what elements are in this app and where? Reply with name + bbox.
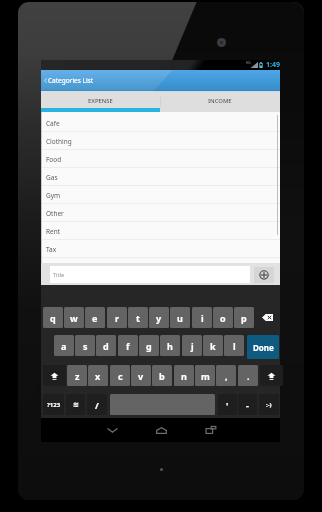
button[interactable]: w xyxy=(64,307,84,328)
button[interactable]: EXPENSE xyxy=(41,91,160,112)
staticText: Done xyxy=(253,342,274,353)
staticText: ≋ xyxy=(73,401,79,409)
staticText: n xyxy=(181,370,187,382)
button[interactable]: Recent apps xyxy=(199,418,223,442)
button[interactable]: u xyxy=(170,307,190,328)
button[interactable]: Categories List xyxy=(41,70,280,91)
staticText: ' xyxy=(226,399,229,411)
button[interactable]: r xyxy=(107,307,127,328)
staticText: j xyxy=(191,340,194,352)
button[interactable]: m xyxy=(195,365,215,386)
staticText: Gas xyxy=(46,173,58,182)
button[interactable]: / xyxy=(87,394,107,415)
staticText: a xyxy=(61,340,67,352)
staticText: b xyxy=(159,370,165,382)
button[interactable]: s xyxy=(75,335,95,356)
button[interactable]: Shift xyxy=(260,365,283,386)
button[interactable]: Other xyxy=(41,204,280,222)
staticText: , xyxy=(225,370,228,382)
staticText: x xyxy=(95,370,101,382)
button[interactable]: q xyxy=(43,307,63,328)
button[interactable]: :-) xyxy=(259,394,279,415)
button[interactable]: e xyxy=(85,307,105,328)
staticText: r xyxy=(115,312,120,324)
button[interactable]: f xyxy=(118,335,138,356)
staticText: t xyxy=(136,312,140,324)
staticText: o xyxy=(220,312,226,324)
staticText: INCOME xyxy=(208,97,232,105)
button[interactable]: Rent xyxy=(41,222,280,240)
staticText: :-) xyxy=(266,401,272,409)
staticText: Cafe xyxy=(46,119,60,128)
button[interactable]: Gym xyxy=(41,186,280,204)
staticText: Clothing xyxy=(46,137,72,146)
button[interactable]: Done xyxy=(247,335,279,359)
button[interactable]: Food xyxy=(41,150,280,168)
button[interactable]: Backspace xyxy=(256,307,279,328)
staticText: Other xyxy=(46,209,64,218)
staticText: ?123 xyxy=(47,401,61,409)
button[interactable]: a xyxy=(54,335,74,356)
button[interactable]: t xyxy=(128,307,148,328)
staticText: Categories List xyxy=(48,76,94,85)
staticText: i xyxy=(201,312,204,324)
staticText: l xyxy=(233,340,236,352)
button[interactable]: Cafe xyxy=(41,114,280,132)
button[interactable]: b xyxy=(152,365,172,386)
staticText: . xyxy=(247,370,250,382)
staticText: v xyxy=(138,370,144,382)
button[interactable]: Tax xyxy=(41,240,280,258)
button[interactable]: Hide keyboard xyxy=(100,418,124,442)
staticText: z xyxy=(75,370,80,382)
staticText: HG xyxy=(246,61,252,65)
staticText: Rent xyxy=(46,227,61,236)
staticText: EXPENSE xyxy=(88,97,113,105)
button[interactable]: d xyxy=(96,335,116,356)
button[interactable]: Add category xyxy=(254,267,274,283)
button[interactable]: INCOME xyxy=(160,91,280,112)
button[interactable]: . xyxy=(238,365,258,386)
staticText: Tax xyxy=(46,245,57,254)
staticText: q xyxy=(50,312,56,324)
button[interactable]: v xyxy=(131,365,151,386)
button[interactable]: Shift xyxy=(43,365,66,386)
staticText: y xyxy=(156,312,162,324)
staticText: h xyxy=(167,340,173,352)
staticText: / xyxy=(95,399,99,411)
staticText: Food xyxy=(46,155,62,164)
button[interactable]: y xyxy=(149,307,169,328)
button[interactable]: Gas xyxy=(41,168,280,186)
button[interactable]: - xyxy=(238,394,257,415)
staticText: p xyxy=(241,312,247,324)
button[interactable]: h xyxy=(160,335,180,356)
staticText: f xyxy=(126,340,130,352)
button[interactable]: ' xyxy=(218,394,237,415)
button[interactable]: z xyxy=(67,365,87,386)
staticText: g xyxy=(146,340,152,352)
button[interactable]: p xyxy=(234,307,254,328)
button[interactable]: ?123 xyxy=(43,394,64,415)
staticText: k xyxy=(210,340,216,352)
button[interactable]: Clothing xyxy=(41,132,280,150)
button[interactable]: c xyxy=(110,365,130,386)
button[interactable]: g xyxy=(139,335,159,356)
button[interactable]: l xyxy=(224,335,244,356)
button[interactable]: ≋ xyxy=(66,394,85,415)
staticText: m xyxy=(201,370,210,382)
staticText: - xyxy=(246,399,249,411)
button[interactable]: j xyxy=(182,335,202,356)
staticText: d xyxy=(103,340,109,352)
button[interactable]: o xyxy=(213,307,233,328)
staticText: Gym xyxy=(46,191,61,200)
button[interactable]: Title xyxy=(50,266,250,283)
button[interactable]: k xyxy=(203,335,223,356)
staticText: s xyxy=(83,340,88,352)
button[interactable]: , xyxy=(216,365,236,386)
staticText: Title xyxy=(53,271,64,278)
button[interactable]: Home xyxy=(149,418,173,442)
button[interactable]: x xyxy=(88,365,108,386)
staticText: u xyxy=(177,312,183,324)
button[interactable]: i xyxy=(192,307,212,328)
button[interactable]: n xyxy=(174,365,194,386)
